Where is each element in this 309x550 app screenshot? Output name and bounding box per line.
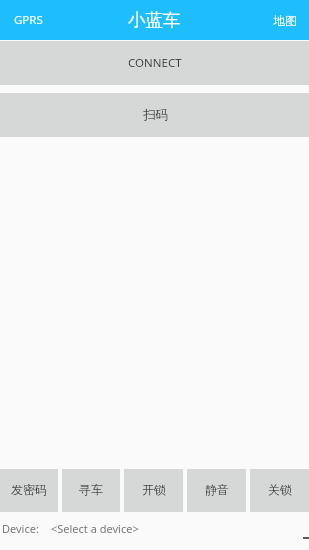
staticText: 静音 <box>205 482 229 497</box>
staticText: 寻车 <box>79 482 103 497</box>
button[interactable]: 发密码 <box>0 469 58 512</box>
button[interactable]: 寻车 <box>62 469 120 512</box>
button[interactable]: GPRS <box>0 12 43 28</box>
staticText: 开锁 <box>142 482 166 497</box>
button[interactable]: 静音 <box>187 469 246 512</box>
button[interactable]: 地图 <box>273 13 309 28</box>
staticText: 关锁 <box>268 482 292 497</box>
staticText: <Select a device> <box>51 521 139 536</box>
staticText: 发密码 <box>11 482 47 497</box>
staticText: CONNECT <box>128 55 182 71</box>
button[interactable]: CONNECT <box>0 41 309 85</box>
staticText: 扫码 <box>143 107 168 123</box>
button[interactable]: 扫码 <box>0 93 309 137</box>
staticText: 小蓝车 <box>128 9 181 31</box>
button[interactable]: 开锁 <box>124 469 183 512</box>
button[interactable]: Device: <box>0 512 139 536</box>
staticText: Device: <box>2 521 39 536</box>
button[interactable]: 关锁 <box>250 469 309 512</box>
